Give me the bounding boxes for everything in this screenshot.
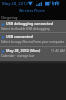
staticText: Calendar · storage bar [1,54,35,58]
staticText: May 28, 2012 [2,1,28,7]
staticText: USB debugging connected [6,21,53,26]
staticText: Wireless Phone [19,8,45,13]
button[interactable]: USB debugging connected [0,20,66,32]
staticText: May 28, 2012 (Mon) [6,48,41,53]
staticText: 11:45 AM [49,0,65,7]
staticText: Select to copy files to/from your comput… [1,40,65,44]
staticText: Ongoing [1,15,18,20]
button[interactable]: USB connected [0,33,66,46]
staticText: USB connected [6,34,33,39]
staticText: Select to disable USB debugging. [1,27,51,31]
staticText: 11:45 AM [51,49,65,53]
button[interactable]: May 28, 2012 (Mon) [0,47,66,61]
